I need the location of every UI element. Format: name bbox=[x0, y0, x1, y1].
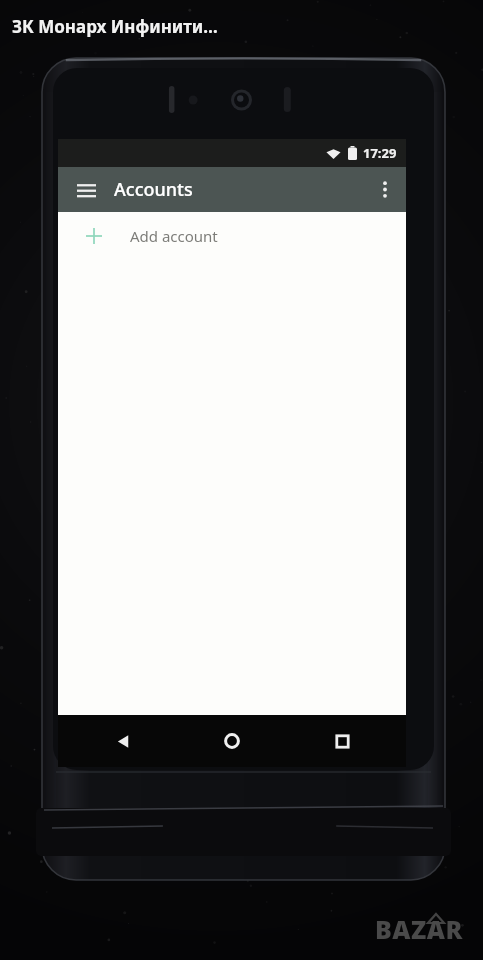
staticText: Add account bbox=[130, 226, 218, 246]
button[interactable]: More options bbox=[364, 167, 406, 212]
button[interactable]: Recent apps bbox=[297, 715, 387, 767]
button[interactable]: Add account bbox=[58, 212, 406, 260]
staticText: ЗК Монарх Инфинити… bbox=[12, 15, 218, 38]
staticText: BAZAR bbox=[375, 912, 463, 946]
button[interactable]: Back bbox=[78, 715, 168, 767]
staticText: 17:29 bbox=[363, 144, 397, 162]
button[interactable]: Open navigation drawer bbox=[58, 167, 114, 212]
button[interactable]: Home bbox=[187, 715, 277, 767]
staticText: Accounts bbox=[114, 177, 193, 202]
